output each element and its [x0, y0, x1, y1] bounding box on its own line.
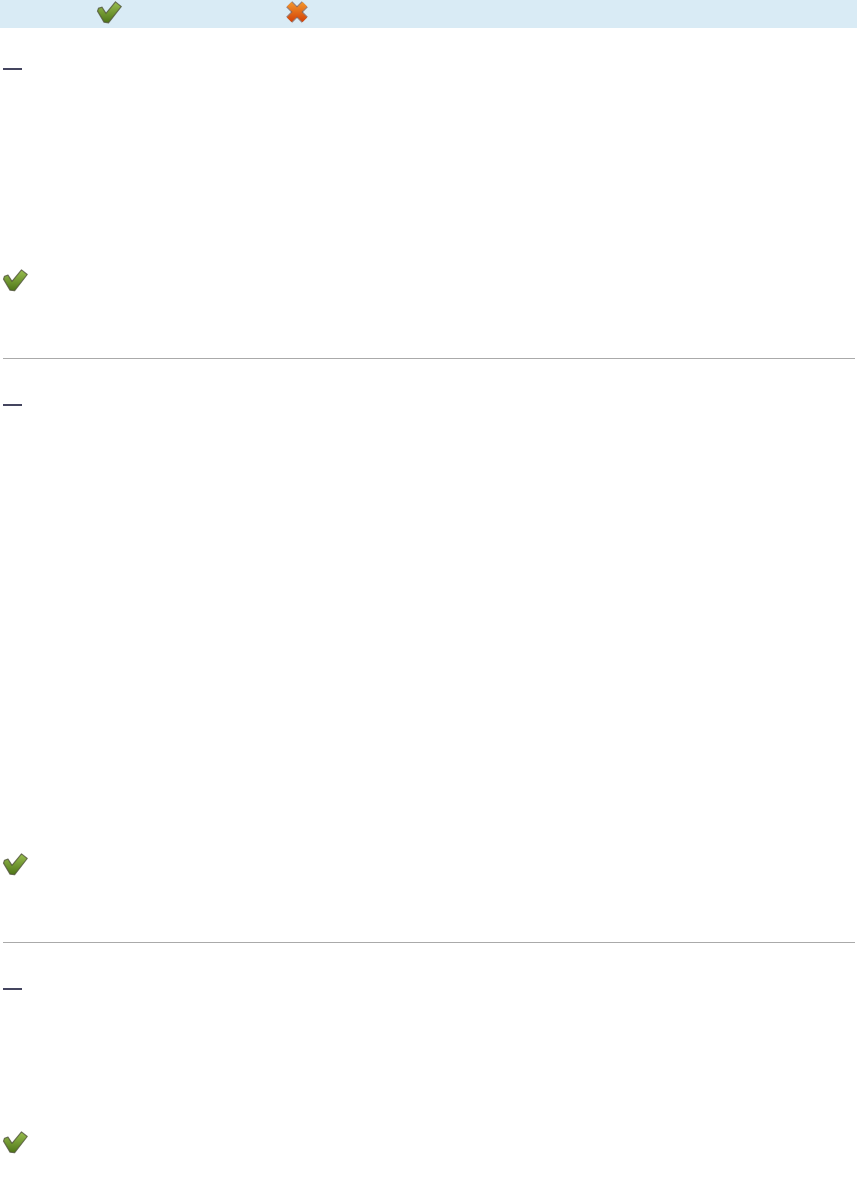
- button[interactable]: Not supported: [286, 1, 308, 23]
- button[interactable]: Section 2 answer: yes: [3, 853, 857, 875]
- button[interactable]: [3, 392, 857, 406]
- button[interactable]: [3, 976, 857, 990]
- button[interactable]: [3, 56, 857, 70]
- button[interactable]: Supported: [97, 1, 122, 23]
- button[interactable]: Section 1 answer: yes: [3, 269, 857, 291]
- button[interactable]: Section 3 answer: yes: [3, 1131, 857, 1153]
